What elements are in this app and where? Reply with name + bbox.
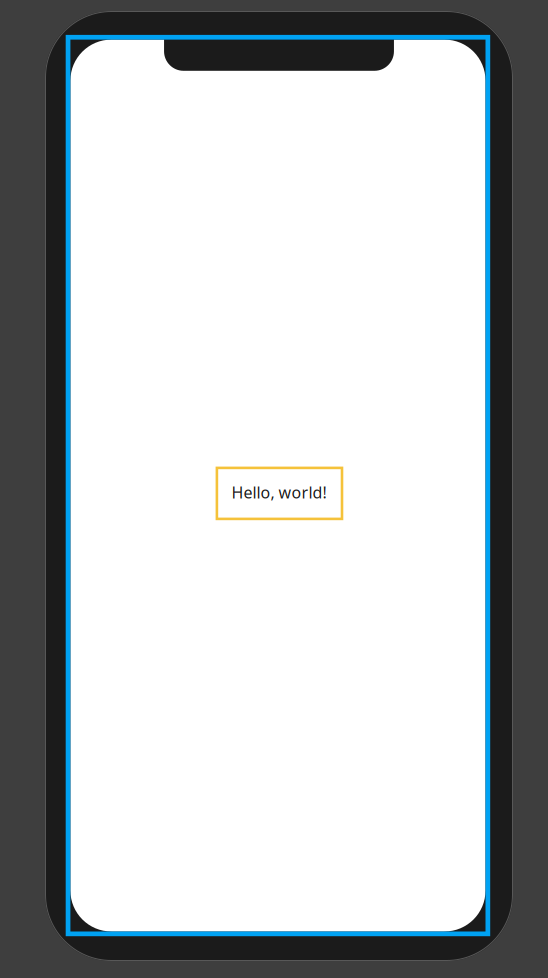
staticText: Hello, world! [231,482,326,503]
